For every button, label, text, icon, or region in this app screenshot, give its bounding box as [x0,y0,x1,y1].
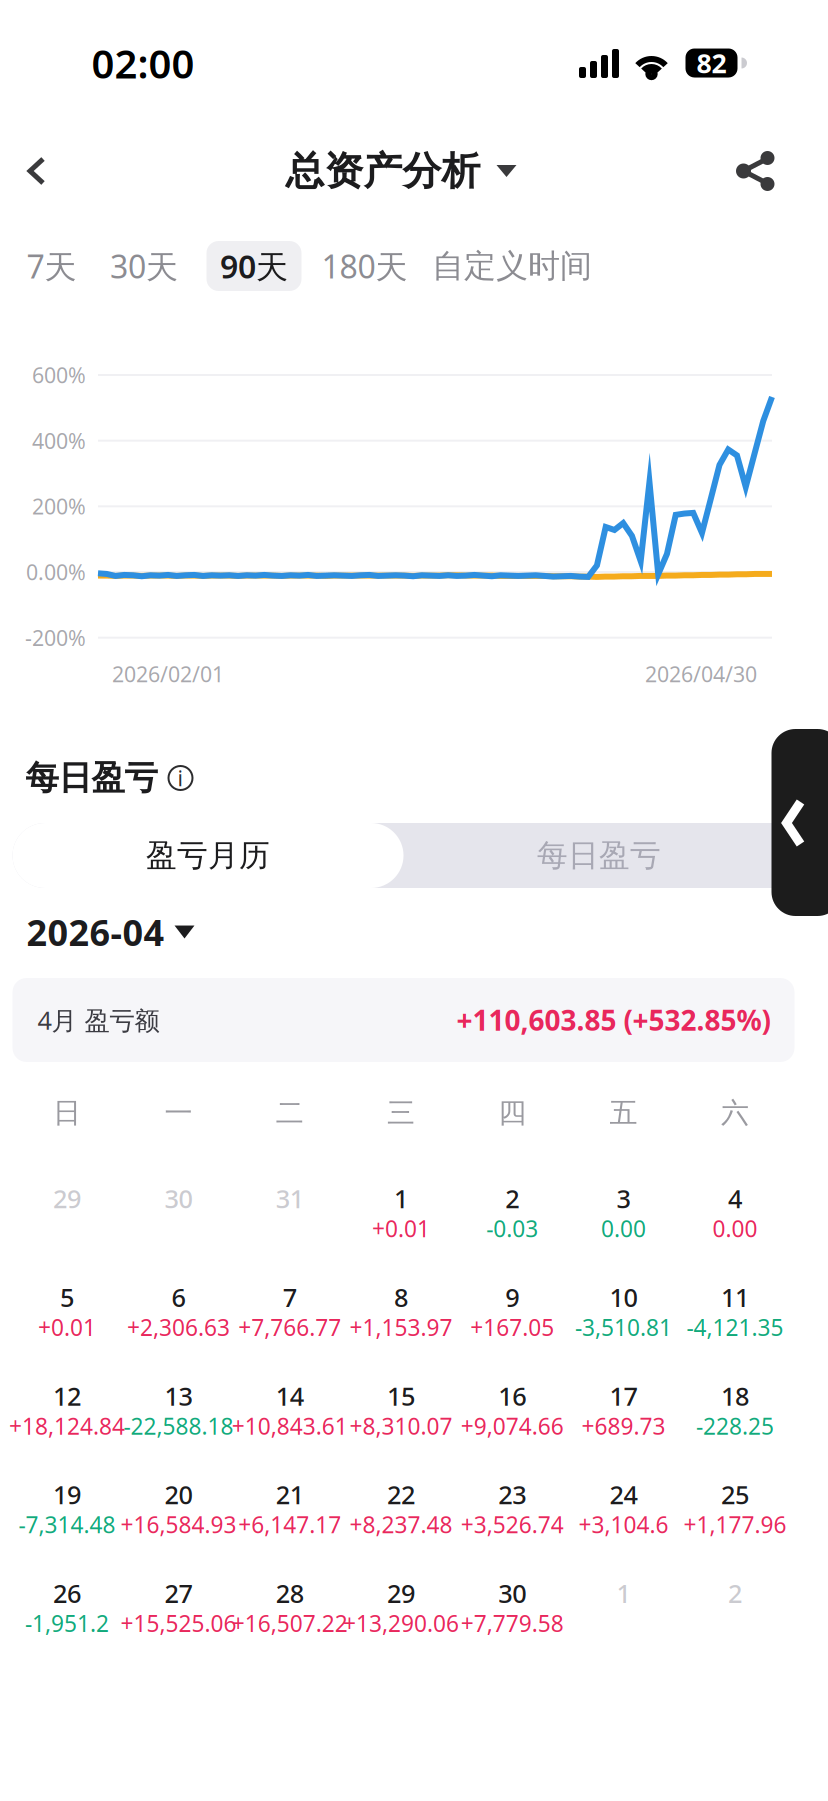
staticText: 13 [164,1379,192,1413]
button[interactable]: Open side panel [771,729,828,916]
staticText: -4,121.35 [686,1312,783,1342]
button[interactable]: 30天 [96,241,191,291]
staticText: 7天 [26,245,76,287]
staticText: +6,147.17 [238,1509,341,1540]
staticText: -200% [25,623,86,652]
staticText: +13,290.06 [343,1608,459,1638]
staticText: -7,314.48 [19,1509,116,1540]
button[interactable]: Back [0,129,78,213]
button[interactable]: 90天 [206,241,301,291]
button[interactable]: 180天 [314,241,414,291]
staticText: -228.25 [696,1411,774,1441]
staticText: 29 [53,1182,81,1215]
staticText: 五 [610,1096,638,1130]
staticText: 0.00 [601,1213,646,1243]
staticText: 2026/04/30 [645,660,757,688]
staticText: -3,510.81 [575,1312,672,1342]
staticText: i [177,764,183,792]
staticText: 0.00 [712,1213,757,1243]
staticText: +2,306.63 [127,1312,230,1342]
button[interactable]: Info [163,761,197,795]
staticText: 9 [505,1280,519,1314]
staticText: -1,951.2 [25,1608,109,1638]
staticText: 三 [387,1096,415,1130]
staticText: 90天 [220,245,288,287]
staticText: 28 [276,1576,304,1610]
staticText: 5 [60,1280,74,1314]
staticText: 19 [53,1478,81,1511]
staticText: +167.05 [470,1312,554,1342]
staticText: 31 [276,1182,304,1215]
staticText: +7,766.77 [238,1312,341,1342]
staticText: 23 [498,1478,526,1511]
staticText: 24 [610,1478,638,1511]
staticText: 四 [498,1096,526,1130]
staticText: 2026-04 [26,908,164,956]
staticText: 180天 [321,245,407,287]
staticText: 200% [32,492,86,520]
button[interactable]: 2026-04 [26,908,194,956]
staticText: 1 [617,1576,631,1610]
button[interactable]: 盈亏月历 [12,823,403,888]
staticText: 15 [387,1379,415,1413]
staticText: +3,526.74 [461,1509,564,1540]
staticText: 400% [32,426,86,455]
staticText: -22,588.18 [123,1411,233,1441]
staticText: +8,310.07 [349,1411,452,1441]
staticText: 17 [610,1379,638,1413]
staticText: 8 [394,1280,408,1314]
button[interactable]: 7天 [6,241,96,291]
staticText: 6 [171,1280,185,1314]
staticText: +110,603.85 (+532.85%) [456,1001,770,1039]
staticText: 14 [276,1379,304,1413]
staticText: 30 [498,1576,526,1610]
staticText: 7 [283,1280,297,1314]
staticText: 日 [53,1096,81,1130]
staticText: +15,525.06 [120,1608,236,1638]
staticText: 2026/02/01 [112,660,224,688]
staticText: 26 [53,1576,81,1610]
staticText: +3,104.6 [579,1509,669,1540]
staticText: +16,584.93 [120,1509,236,1540]
staticText: +18,124.84 [9,1411,125,1441]
button[interactable]: 自定义时间 [429,241,594,291]
staticText: +1,177.96 [683,1509,786,1540]
staticText: 11 [721,1280,749,1314]
staticText: 1 [394,1182,408,1215]
staticText: 每日盈亏 [537,837,661,874]
staticText: -0.03 [486,1213,538,1243]
staticText: 总资产分析 [285,147,480,195]
staticText: 二 [276,1096,304,1130]
staticText: 每日盈亏 [25,757,157,798]
staticText: 22 [387,1478,415,1511]
staticText: 0.00% [26,558,86,586]
staticText: 82 [696,45,726,81]
staticText: 25 [721,1478,749,1511]
staticText: 29 [387,1576,415,1610]
staticText: 盈亏月历 [146,837,270,874]
staticText: 20 [164,1478,192,1511]
staticText: +16,507.22 [232,1608,348,1638]
staticText: +0.01 [38,1312,96,1342]
staticText: 4 [728,1182,742,1215]
staticText: +1,153.97 [349,1312,452,1342]
staticText: 2 [728,1576,742,1610]
staticText: 30 [164,1182,192,1215]
staticText: 18 [721,1379,749,1413]
staticText: +10,843.61 [232,1411,348,1441]
staticText: 六 [721,1096,749,1130]
staticText: +8,237.48 [349,1509,452,1540]
button[interactable]: Share [713,129,797,213]
staticText: 10 [610,1280,638,1314]
button[interactable]: 每日盈亏 [403,823,794,888]
staticText: 30天 [110,245,178,287]
staticText: 16 [498,1379,526,1413]
staticText: 4月 盈亏额 [37,1003,159,1037]
staticText: 21 [276,1478,304,1511]
staticText: +9,074.66 [461,1411,564,1441]
staticText: +689.73 [582,1411,666,1441]
